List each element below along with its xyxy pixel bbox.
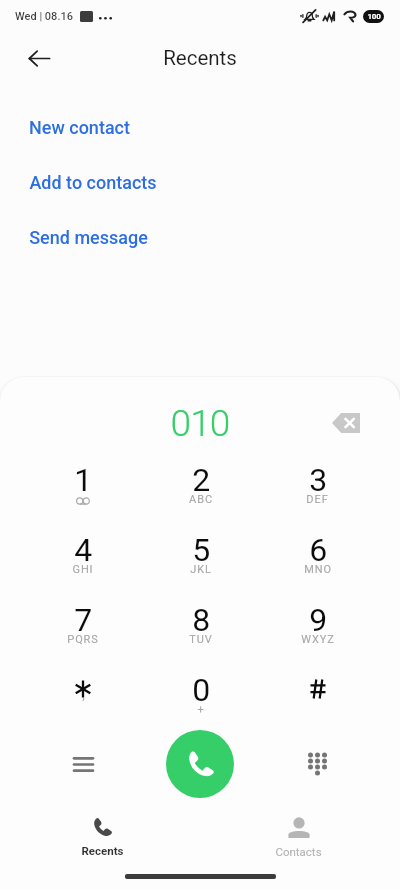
button[interactable]: 1	[0, 461, 134, 531]
button[interactable]: Back	[18, 42, 60, 74]
staticText: 4	[74, 531, 92, 569]
staticText: JKL	[190, 563, 212, 576]
staticText: 010	[170, 402, 230, 445]
button[interactable]: 7	[0, 601, 134, 671]
button[interactable]	[267, 671, 400, 741]
staticText: 1	[74, 461, 92, 499]
staticText: 5	[192, 531, 210, 569]
staticText: PQRS	[67, 633, 99, 646]
button[interactable]: Call	[166, 730, 234, 798]
button[interactable]: Dialpad	[293, 740, 341, 788]
staticText: Wed | 08.16	[15, 10, 73, 23]
staticText: 8	[192, 601, 210, 639]
button[interactable]: Recents	[40, 814, 164, 860]
staticText: MNO	[304, 563, 332, 576]
staticText: Send message	[29, 227, 148, 248]
button[interactable]: 6	[267, 531, 400, 601]
button[interactable]: ’	[0, 671, 134, 741]
button[interactable]: 5	[134, 531, 267, 601]
staticText: 0	[192, 671, 210, 709]
staticText: Contacts	[275, 845, 322, 858]
staticText: 3	[309, 461, 327, 499]
staticText: 6	[309, 531, 327, 569]
button[interactable]: New contact	[0, 104, 400, 150]
staticText: WXYZ	[301, 633, 335, 646]
button[interactable]: 0	[134, 671, 267, 741]
staticText: 7	[74, 601, 92, 639]
button[interactable]: 8	[134, 601, 267, 671]
button[interactable]: Send message	[0, 214, 400, 260]
staticText: DEF	[306, 493, 329, 506]
staticText: 9	[309, 601, 327, 639]
staticText: New contact	[29, 117, 130, 138]
staticText: ’	[82, 697, 85, 711]
staticText: 2	[192, 461, 210, 499]
staticText: ABC	[189, 493, 213, 506]
button[interactable]: 9	[267, 601, 400, 671]
button[interactable]: 2	[134, 461, 267, 531]
staticText: +	[197, 703, 205, 716]
staticText: GHI	[72, 563, 94, 576]
staticText: Recents	[81, 844, 124, 857]
button[interactable]: 3	[267, 461, 400, 531]
staticText: 100	[367, 12, 381, 21]
staticText: Recents	[163, 46, 237, 70]
button[interactable]: Contacts	[236, 814, 360, 860]
button[interactable]: 4	[0, 531, 134, 601]
button[interactable]: Menu	[59, 740, 107, 788]
button[interactable]: Backspace	[324, 401, 368, 445]
staticText: TUV	[189, 633, 213, 646]
button[interactable]: Add to contacts	[0, 159, 400, 205]
staticText: Add to contacts	[29, 172, 157, 193]
